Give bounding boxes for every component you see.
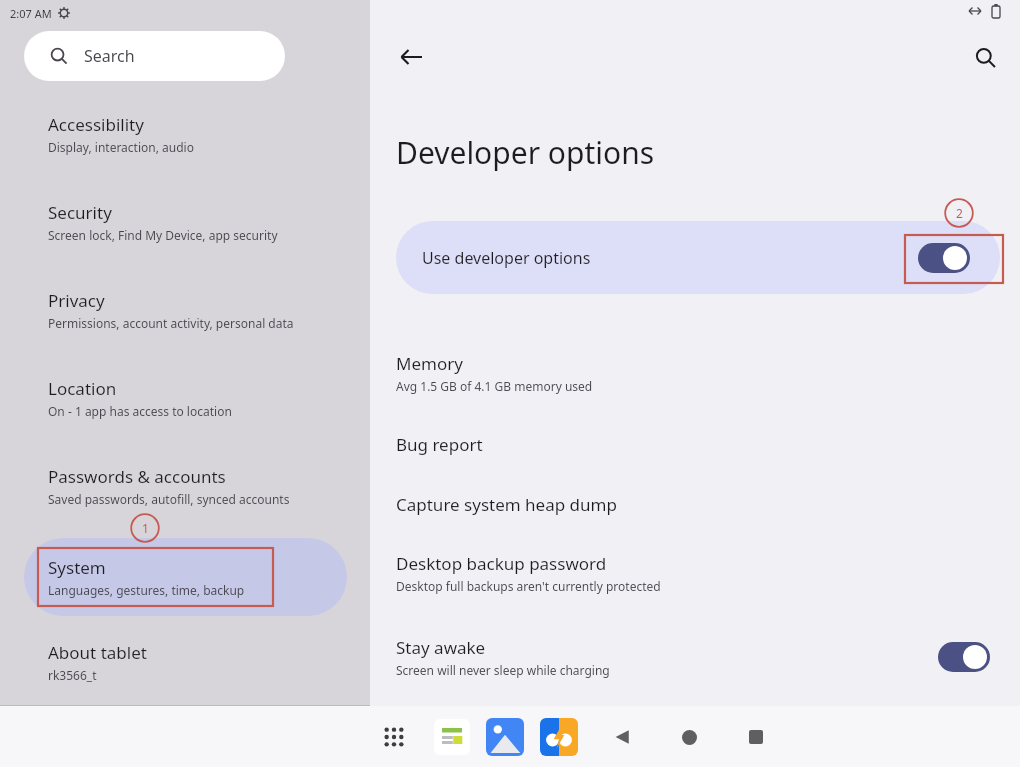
staticText: Stay awake	[396, 636, 486, 659]
staticText: Capture system heap dump	[396, 493, 617, 516]
staticText: Languages, gestures, time, backup	[48, 582, 245, 598]
staticText: About tablet	[48, 641, 147, 664]
staticText: Avg 1.5 GB of 4.1 GB memory used	[396, 378, 593, 394]
button[interactable]: App	[540, 718, 578, 756]
button[interactable]: Back	[602, 717, 642, 757]
staticText: Desktop backup password	[396, 552, 607, 575]
staticText: Privacy	[48, 289, 105, 312]
button[interactable]: All apps	[372, 715, 416, 759]
button[interactable]: News app	[434, 719, 470, 755]
button[interactable]: Memory	[396, 352, 1020, 394]
button[interactable]: Stay awake	[370, 628, 1020, 686]
staticText: rk3566_t	[48, 667, 97, 683]
button[interactable]: Search	[24, 31, 285, 81]
button[interactable]: Gallery	[486, 718, 524, 756]
button[interactable]: Search	[962, 34, 1008, 80]
button[interactable]: Toggle on	[938, 642, 990, 672]
staticText: Location	[48, 377, 117, 400]
staticText: Accessibility	[48, 113, 144, 136]
staticText: On - 1 app has access to location	[48, 403, 232, 419]
staticText: Desktop full backups aren't currently pr…	[396, 578, 661, 594]
staticText: Use developer options	[422, 247, 591, 269]
staticText: Bug report	[396, 433, 483, 456]
staticText: 2:07 AM	[10, 6, 52, 21]
staticText: Search	[84, 45, 135, 67]
staticText: Security	[48, 201, 112, 224]
button[interactable]: Home	[669, 717, 709, 757]
staticText: Display, interaction, audio	[48, 139, 194, 155]
button[interactable]: Desktop backup password	[396, 552, 1020, 594]
staticText: 2	[956, 205, 963, 221]
staticText: Screen will never sleep while charging	[396, 662, 610, 678]
staticText: 1	[142, 520, 149, 536]
button[interactable]: System	[24, 538, 347, 616]
staticText: System	[48, 556, 106, 579]
button[interactable]: Bug report	[396, 433, 1020, 456]
button[interactable]: Back	[388, 34, 434, 80]
button[interactable]: Use developer options	[396, 221, 1000, 294]
button[interactable]: Toggle on	[918, 243, 970, 273]
staticText: Saved passwords, autofill, synced accoun…	[48, 491, 290, 507]
staticText: Memory	[396, 352, 463, 375]
button[interactable]: Capture system heap dump	[396, 493, 1020, 516]
staticText: Passwords & accounts	[48, 465, 226, 488]
staticText: Screen lock, Find My Device, app securit…	[48, 227, 278, 243]
staticText: Permissions, account activity, personal …	[48, 315, 294, 331]
staticText: Developer options	[396, 132, 655, 173]
button[interactable]: Recent apps	[736, 717, 776, 757]
